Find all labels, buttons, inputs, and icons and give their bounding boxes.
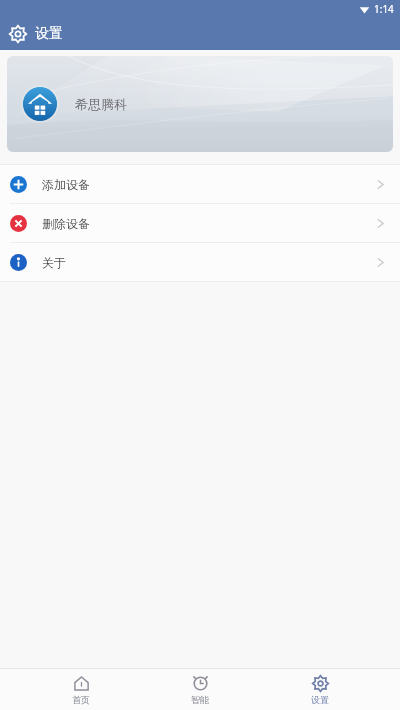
staticText: 1:14 xyxy=(374,2,394,16)
staticText: 设置 xyxy=(311,694,329,705)
button[interactable]: 关于 xyxy=(0,243,400,281)
staticText: 智能 xyxy=(191,694,209,705)
staticText: 首页 xyxy=(72,694,90,705)
staticText: 希思腾科 xyxy=(75,96,127,112)
button[interactable]: 添加设备 xyxy=(0,165,400,203)
staticText: 关于 xyxy=(42,255,66,270)
staticText: 设置 xyxy=(35,25,63,43)
other: Settings xyxy=(9,25,27,43)
button[interactable]: 删除设备 xyxy=(0,204,400,242)
button[interactable]: 希思腾科 xyxy=(7,56,393,152)
button[interactable]: 设置 xyxy=(281,675,359,705)
staticText: 删除设备 xyxy=(42,216,90,231)
staticText: 添加设备 xyxy=(42,177,90,192)
button[interactable]: 智能 xyxy=(161,675,239,705)
button[interactable]: 首页 xyxy=(42,675,120,705)
